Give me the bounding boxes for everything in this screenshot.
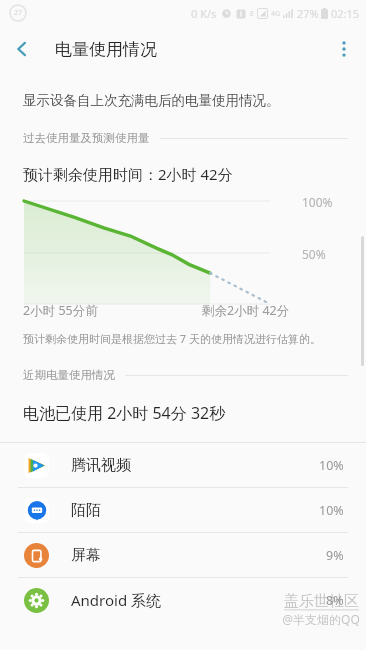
staticText: E — [250, 9, 254, 19]
staticText: 预计剩余使用时间是根据您过去 7 天的使用情况进行估算的。 — [23, 331, 322, 346]
button[interactable]: Back — [0, 27, 44, 71]
button[interactable]: 腾讯视频 — [0, 443, 366, 487]
button[interactable]: 陌陌 — [0, 488, 366, 532]
button[interactable]: Android 系统 — [0, 578, 366, 622]
staticText: 9% — [326, 547, 344, 564]
staticText: 近期电量使用情况 — [23, 368, 115, 382]
staticText: 02:15 — [331, 6, 360, 21]
staticText: 4G — [271, 9, 281, 19]
staticText: 陌陌 — [71, 501, 101, 520]
staticText: 27 — [14, 8, 23, 18]
button[interactable]: More options — [322, 27, 366, 71]
staticText: 2小时 55分前 — [23, 302, 98, 319]
staticText: 屏幕 — [71, 546, 101, 565]
staticText: 过去使用量及预测使用量 — [23, 131, 150, 145]
staticText: 0 K/s — [191, 6, 217, 21]
button[interactable]: 屏幕 — [0, 533, 366, 577]
staticText: 8% — [326, 592, 344, 609]
staticText: 10% — [319, 457, 344, 474]
staticText: 显示设备自上次充满电后的电量使用情况。 — [23, 92, 280, 109]
staticText: 100% — [302, 194, 333, 210]
staticText: 50% — [302, 246, 326, 262]
staticText: 10% — [319, 502, 344, 519]
staticText: 电池已使用 2小时 54分 32秒 — [23, 402, 226, 424]
staticText: 电量使用情况 — [55, 39, 157, 60]
staticText: 剩余2小时 42分 — [202, 302, 290, 319]
staticText: 27% — [297, 6, 319, 21]
staticText: @半支烟的QQ — [282, 611, 360, 627]
staticText: Android 系统 — [71, 590, 162, 610]
staticText: 盖乐世社区 — [284, 592, 359, 611]
staticText: 预计剩余使用时间：2小时 42分 — [23, 164, 233, 184]
staticText: 腾讯视频 — [71, 456, 131, 475]
